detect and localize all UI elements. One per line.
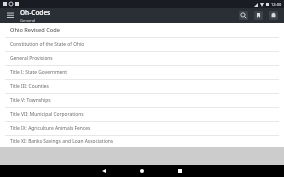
staticText: Ohio Revised Code xyxy=(10,26,60,34)
staticText: Title V: Townships xyxy=(10,97,51,104)
button[interactable]: Title V: Townships xyxy=(0,94,284,107)
button[interactable]: More options xyxy=(266,8,281,23)
staticText: 12:00 xyxy=(271,2,282,7)
staticText: Title III: Counties xyxy=(10,83,49,90)
button[interactable]: Search xyxy=(236,8,251,23)
button[interactable]: Title VII: Municipal Corporations xyxy=(0,108,284,121)
staticText: General Provisions xyxy=(10,55,53,62)
staticText: Title XI: Banks Savings and Loan Associa… xyxy=(10,138,114,145)
button[interactable]: Title III: Counties xyxy=(0,80,284,93)
button[interactable]: Bookmarks xyxy=(251,8,266,23)
button[interactable]: Home xyxy=(123,165,161,177)
button[interactable]: Open navigation drawer xyxy=(0,8,20,23)
staticText: Title IX: Agriculture Animals Fences xyxy=(10,125,91,132)
staticText: Oh-Codes xyxy=(20,8,51,17)
button[interactable]: Title I: State Government xyxy=(0,66,284,79)
button[interactable]: General Provisions xyxy=(0,52,284,65)
staticText: Title VII: Municipal Corporations xyxy=(10,111,84,118)
button[interactable]: Back xyxy=(85,165,123,177)
staticText: General xyxy=(20,18,36,23)
button[interactable]: Title IX: Agriculture Animals Fences xyxy=(0,122,284,135)
button[interactable]: Constitution of the State of Ohio xyxy=(0,38,284,51)
button[interactable]: Recent apps xyxy=(161,165,199,177)
staticText: Title I: State Government xyxy=(10,69,68,76)
button[interactable]: Title XI: Banks Savings and Loan Associa… xyxy=(0,136,284,147)
staticText: Constitution of the State of Ohio xyxy=(10,41,85,48)
